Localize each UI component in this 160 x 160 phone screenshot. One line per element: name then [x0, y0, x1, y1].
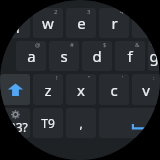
- staticText: ,: [79, 115, 83, 131]
- staticText: ': [122, 74, 124, 82]
- staticText: g: [149, 46, 159, 66]
- staticText: r: [111, 13, 118, 33]
- staticText: q: [10, 13, 20, 33]
- button[interactable]: r: [99, 8, 129, 38]
- staticText: 3: [87, 8, 91, 16]
- staticText: t: [143, 13, 149, 33]
- button[interactable]: q: [0, 8, 30, 38]
- staticText: f: [127, 46, 133, 66]
- staticText: #: [70, 41, 74, 49]
- staticText: w: [42, 13, 54, 33]
- button[interactable]: f: [115, 41, 145, 71]
- button[interactable]: g: [148, 41, 160, 71]
- button[interactable]: c: [99, 74, 129, 105]
- staticText: z: [44, 80, 52, 100]
- button[interactable]: z: [33, 74, 63, 105]
- staticText: d: [92, 46, 102, 66]
- button[interactable]: d: [82, 41, 112, 71]
- staticText: :: [153, 74, 155, 82]
- button[interactable]: w: [33, 8, 63, 38]
- button[interactable]: s: [49, 41, 79, 71]
- staticText: &: [135, 41, 140, 49]
- button[interactable]: e: [66, 8, 96, 38]
- staticText: v: [142, 80, 150, 100]
- button[interactable]: Shift: [0, 74, 30, 105]
- staticText: a: [27, 46, 36, 66]
- staticText: $: [103, 41, 107, 49]
- staticText: T9: [41, 115, 55, 131]
- staticText: 123?: [2, 119, 28, 135]
- button[interactable]: a: [16, 41, 46, 71]
- button[interactable]: Space: [99, 108, 160, 138]
- staticText: c: [110, 80, 118, 100]
- staticText: e: [77, 13, 86, 33]
- button[interactable]: x: [66, 74, 96, 105]
- button[interactable]: Symbols and settings: [0, 108, 30, 138]
- button[interactable]: T9: [33, 108, 63, 138]
- button[interactable]: Comma: [66, 108, 96, 138]
- staticText: !: [56, 74, 58, 82]
- staticText: *: [151, 41, 155, 49]
- button[interactable]: t: [132, 8, 160, 38]
- staticText: x: [77, 80, 85, 100]
- staticText: 4: [120, 8, 124, 16]
- button[interactable]: v: [132, 74, 160, 105]
- staticText: 2: [54, 8, 58, 16]
- staticText: s: [60, 46, 68, 66]
- staticText: @: [35, 41, 41, 49]
- staticText: ": [88, 74, 91, 82]
